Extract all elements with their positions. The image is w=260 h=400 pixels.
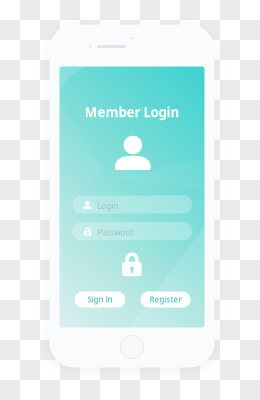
- staticText: Register: [149, 294, 181, 305]
- staticText: Password: [97, 227, 133, 238]
- button[interactable]: Login: [72, 195, 192, 213]
- staticText: Member Login: [84, 103, 179, 121]
- button[interactable]: Register: [140, 291, 190, 307]
- button[interactable]: Password: [72, 222, 192, 240]
- staticText: Login: [97, 201, 118, 211]
- staticText: Sign in: [87, 294, 112, 305]
- button[interactable]: Sign in: [74, 291, 125, 307]
